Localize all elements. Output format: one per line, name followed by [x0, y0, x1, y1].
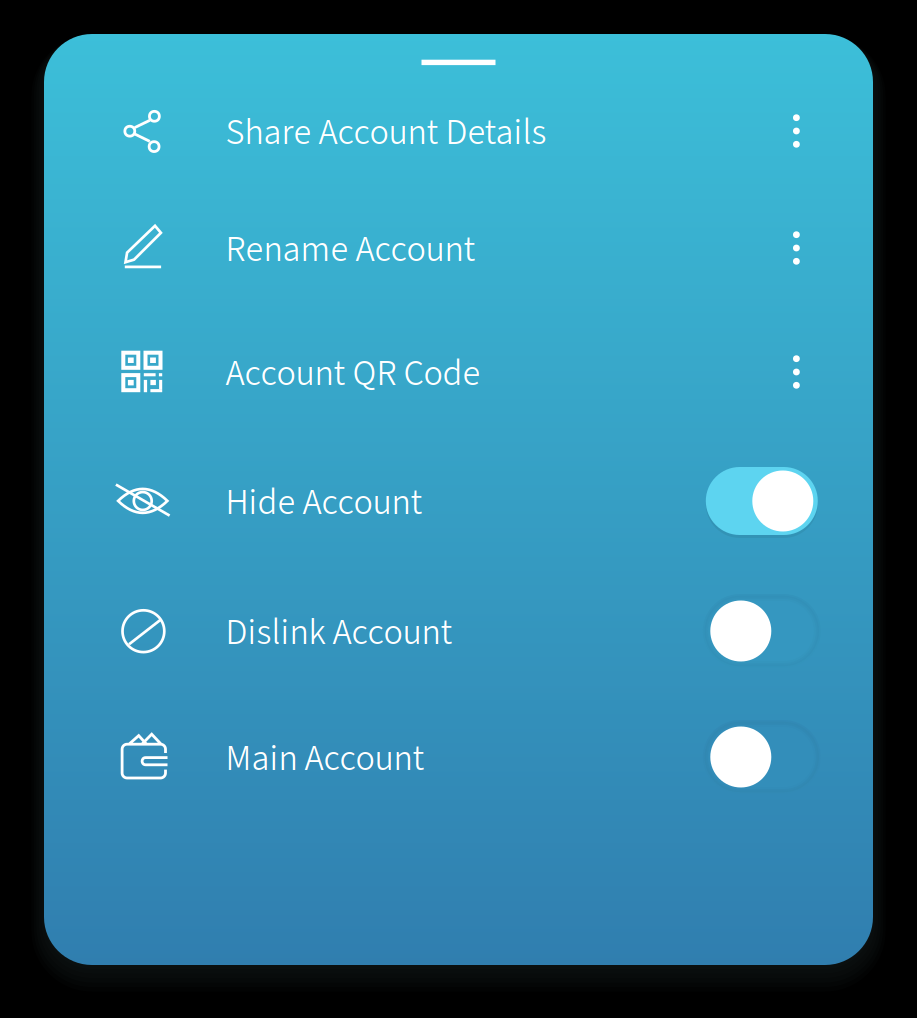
- button[interactable]: Hide Account: [44, 445, 873, 557]
- button[interactable]: Turn on: [706, 723, 818, 791]
- button[interactable]: Share Account Details: [44, 75, 873, 187]
- staticText: Dislink Account: [225, 607, 452, 658]
- staticText: Hide Account: [225, 477, 422, 528]
- button[interactable]: Rename Account: [44, 192, 873, 304]
- staticText: Share Account Details: [225, 107, 546, 158]
- button[interactable]: Turn off: [706, 467, 818, 535]
- button[interactable]: More options: [766, 334, 826, 410]
- staticText: Rename Account: [225, 224, 475, 275]
- staticText: Main Account: [225, 733, 424, 784]
- button[interactable]: Main Account: [44, 701, 873, 813]
- button[interactable]: More options: [766, 210, 826, 286]
- button[interactable]: Account QR Code: [44, 316, 873, 428]
- button[interactable]: Turn on: [706, 597, 818, 665]
- staticText: Account QR Code: [225, 348, 480, 399]
- button[interactable]: Dislink Account: [44, 575, 873, 687]
- button[interactable]: More options: [766, 93, 826, 169]
